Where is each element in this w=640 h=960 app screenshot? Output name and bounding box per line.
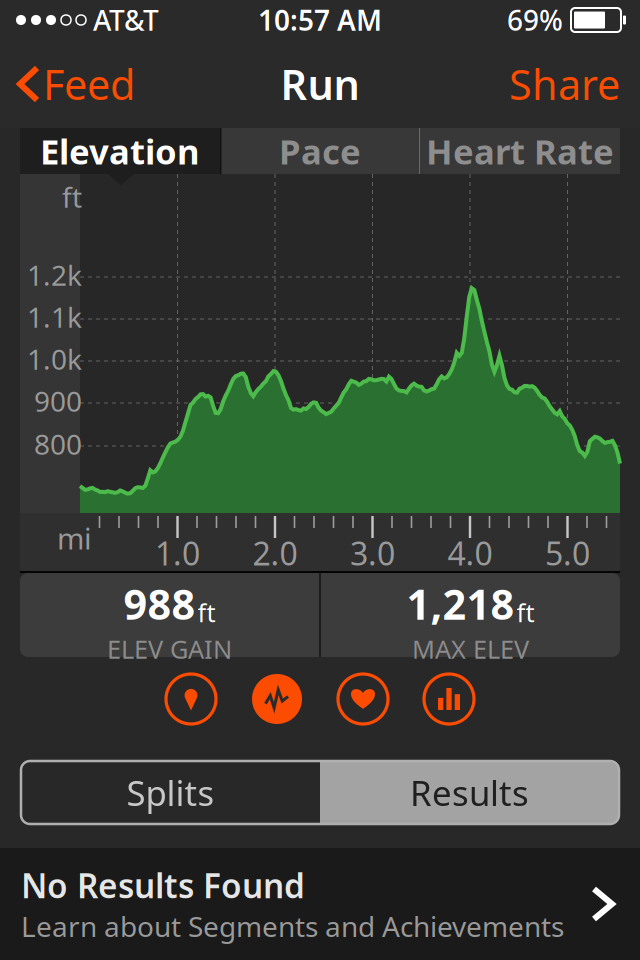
staticText: ft bbox=[516, 595, 534, 629]
staticText: Elevation bbox=[40, 128, 200, 174]
staticText: 5.0 bbox=[545, 532, 590, 574]
staticText: No Results Found bbox=[21, 863, 305, 908]
button[interactable]: Elevation bbox=[252, 674, 302, 724]
staticText: 1.0 bbox=[155, 532, 200, 574]
staticText: 1.1k bbox=[27, 298, 82, 336]
staticText: ft bbox=[62, 178, 82, 216]
button[interactable]: Results bbox=[320, 761, 619, 824]
staticText: mi bbox=[57, 518, 92, 557]
button[interactable]: Splits bbox=[21, 761, 320, 824]
button[interactable]: Map bbox=[166, 674, 216, 724]
button[interactable]: Heart rate bbox=[338, 674, 388, 724]
staticText: Results bbox=[410, 769, 529, 815]
staticText: AT&T bbox=[86, 1, 159, 39]
staticText: ELEV GAIN bbox=[107, 632, 232, 666]
staticText: Splits bbox=[126, 769, 214, 815]
button[interactable]: Heart Rate bbox=[420, 128, 620, 174]
button[interactable]: Splits bbox=[424, 674, 474, 724]
button[interactable]: No Results Found bbox=[0, 848, 640, 960]
staticText: 900 bbox=[34, 382, 82, 420]
button[interactable]: Pace bbox=[220, 128, 420, 174]
staticText: MAX ELEV bbox=[412, 632, 529, 666]
staticText: 1.2k bbox=[27, 256, 82, 294]
staticText: Feed bbox=[43, 57, 135, 111]
staticText: Share bbox=[509, 57, 620, 111]
staticText: 10:57 AM bbox=[258, 1, 382, 39]
staticText: Learn about Segments and Achievements bbox=[21, 907, 564, 945]
staticText: 3.0 bbox=[350, 532, 395, 574]
staticText: 1.0k bbox=[27, 340, 82, 378]
staticText: 1,218 bbox=[406, 576, 514, 631]
button[interactable]: Share bbox=[501, 49, 628, 119]
staticText: 69% bbox=[507, 1, 563, 39]
staticText: ft bbox=[197, 595, 215, 629]
staticText: 4.0 bbox=[447, 532, 492, 574]
staticText: 800 bbox=[34, 425, 82, 463]
button[interactable]: Feed bbox=[12, 49, 143, 119]
staticText: 988 bbox=[123, 576, 195, 631]
button[interactable]: Elevation bbox=[20, 128, 220, 174]
staticText: Run bbox=[280, 57, 359, 111]
staticText: Heart Rate bbox=[426, 128, 614, 174]
staticText: 2.0 bbox=[252, 532, 297, 574]
staticText: Pace bbox=[279, 128, 361, 174]
